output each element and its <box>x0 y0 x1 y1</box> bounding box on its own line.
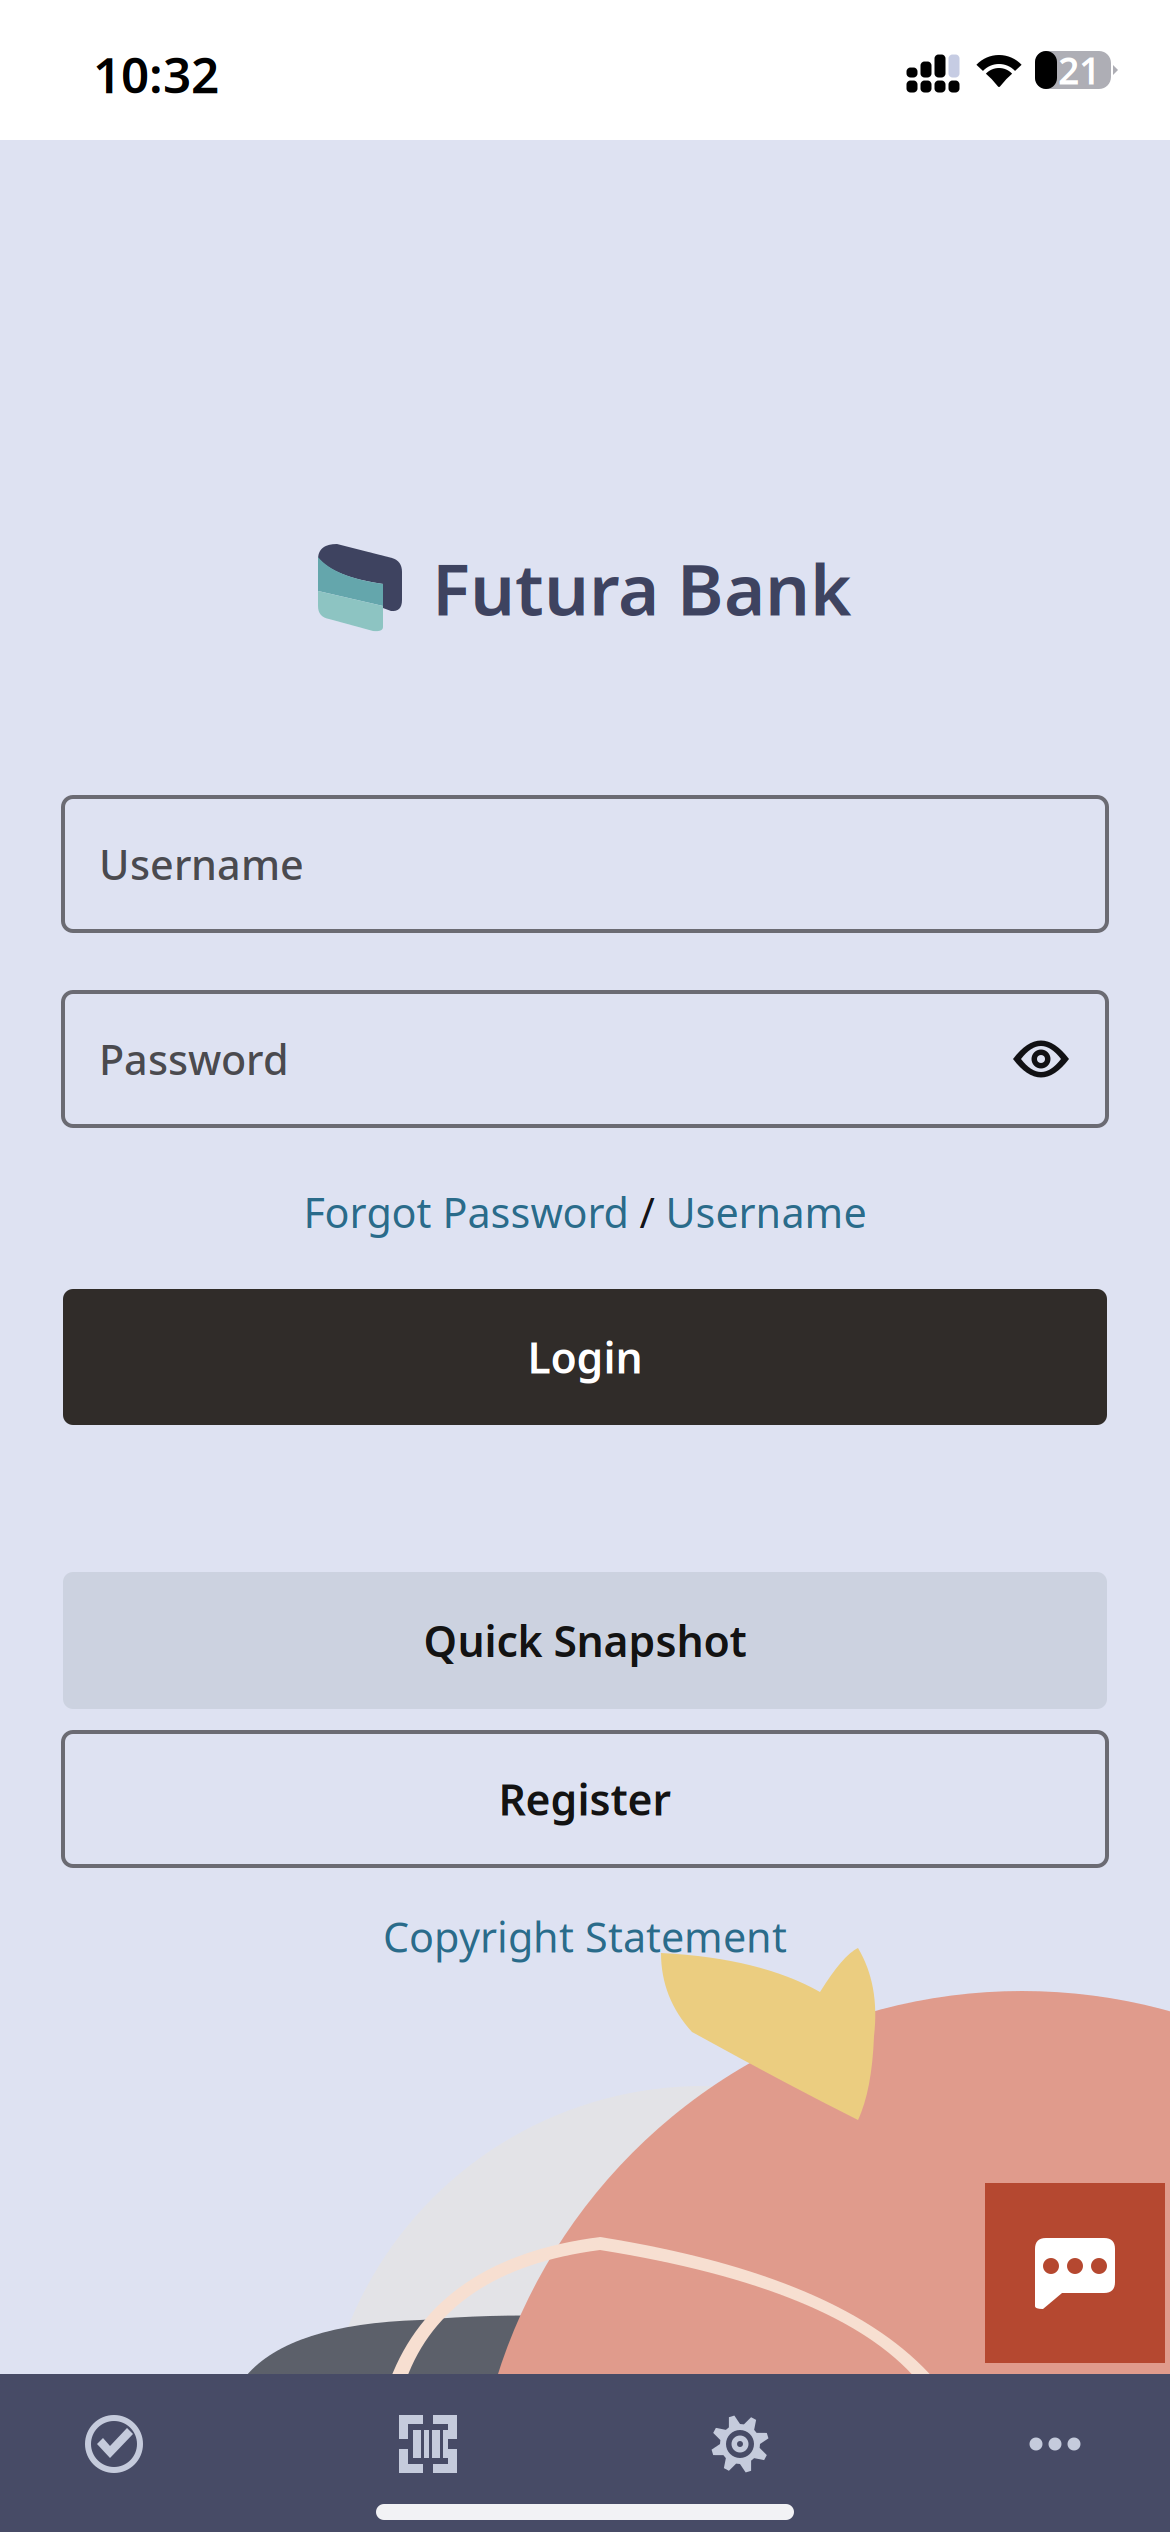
button[interactable]: Accounts <box>0 2365 228 2523</box>
staticText: 10:32 <box>93 41 219 107</box>
button[interactable]: Copyright Statement <box>383 1909 787 1964</box>
button[interactable]: Chat <box>985 2183 1165 2363</box>
staticText: Password <box>99 1032 289 1086</box>
staticText: Register <box>498 1771 671 1827</box>
button[interactable]: Scan <box>314 2365 542 2523</box>
button[interactable]: Settings <box>626 2365 854 2523</box>
button[interactable]: Username <box>665 1185 866 1239</box>
staticText: Username <box>665 1185 866 1239</box>
button[interactable]: Forgot Password <box>303 1185 628 1239</box>
button[interactable]: More <box>941 2365 1169 2523</box>
staticText: Username <box>99 837 304 891</box>
staticText: Login <box>527 1329 642 1385</box>
staticText: 21 <box>1058 45 1100 95</box>
staticText: / <box>628 1185 665 1239</box>
staticText: Copyright Statement <box>383 1909 787 1964</box>
button[interactable]: Show password <box>1013 1038 1069 1080</box>
staticText: Forgot Password <box>303 1185 628 1239</box>
staticText: Quick Snapshot <box>423 1612 746 1669</box>
staticText: Futura Bank <box>432 541 852 635</box>
button[interactable]: Login <box>63 1289 1107 1425</box>
button[interactable]: Quick Snapshot <box>63 1572 1107 1709</box>
button[interactable]: Register <box>63 1732 1107 1866</box>
